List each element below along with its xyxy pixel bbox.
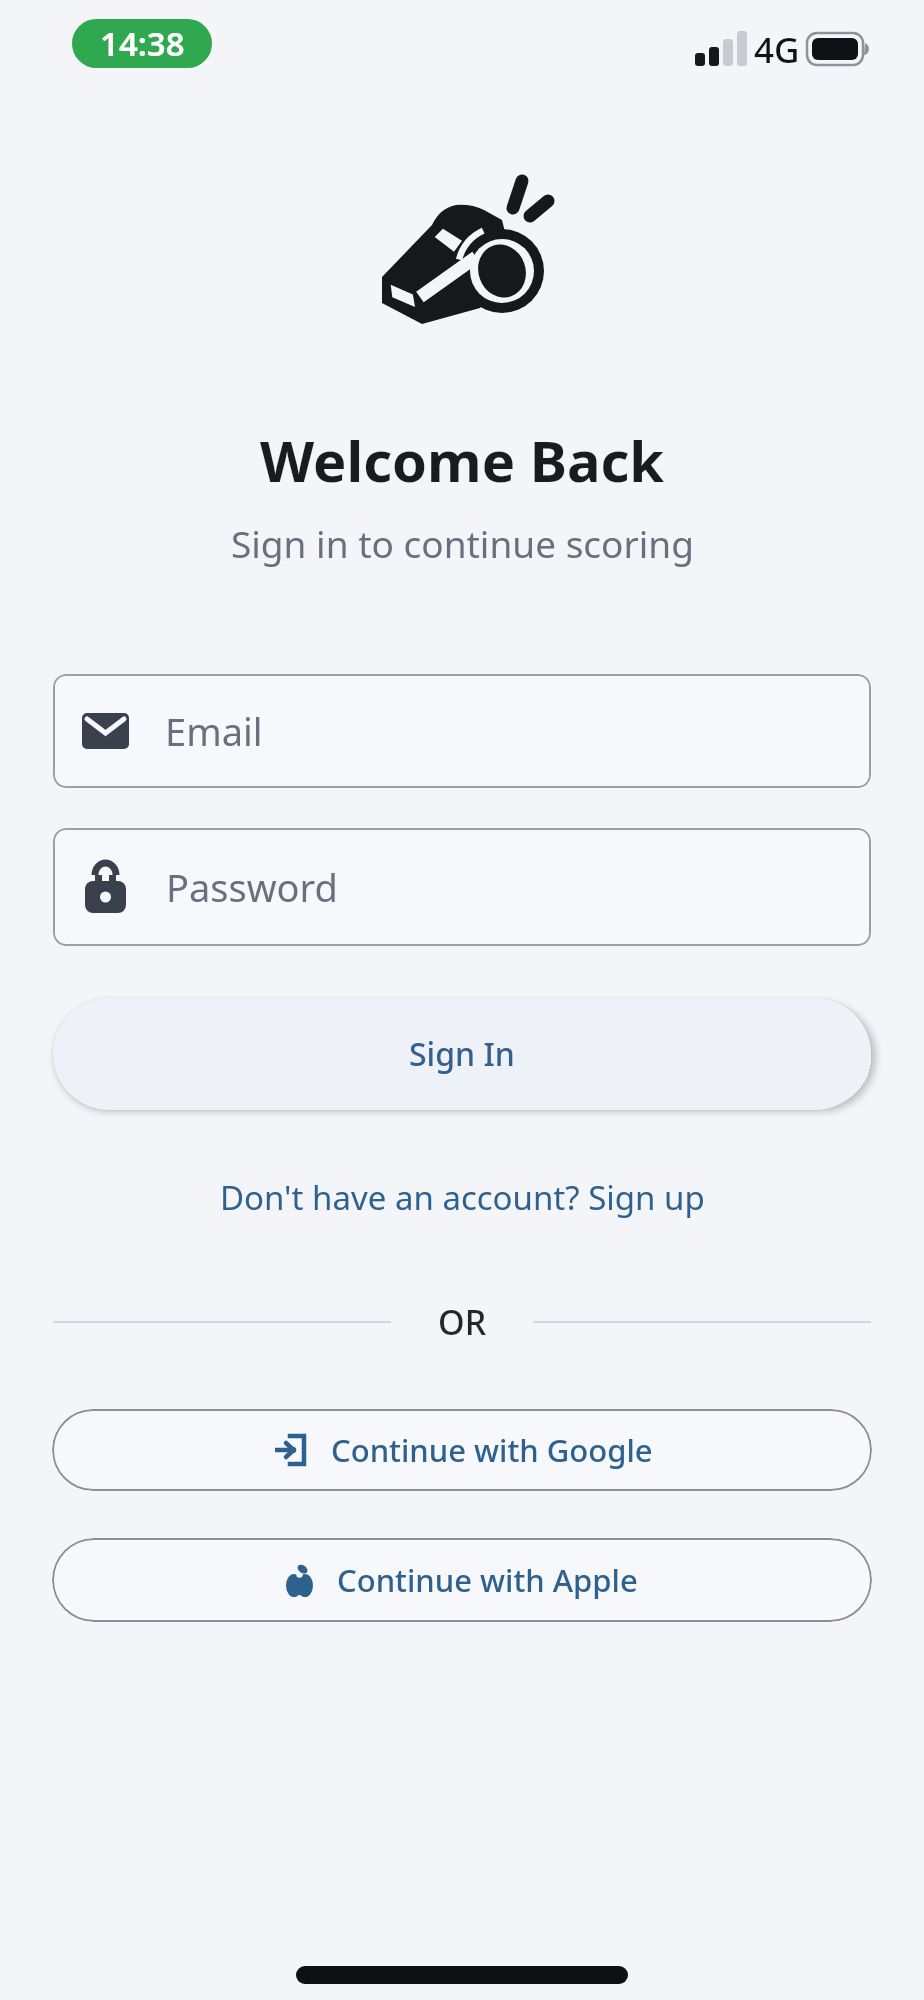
staticText: 14:38 <box>100 21 185 66</box>
staticText: Continue with Apple <box>337 1559 638 1601</box>
button[interactable]: Password <box>53 828 871 946</box>
staticText: Don't have an account? Sign up <box>220 1175 705 1220</box>
staticText: Sign In <box>409 1032 515 1076</box>
button[interactable]: Don't have an account? Sign up <box>0 1168 924 1226</box>
button[interactable]: Continue with Apple <box>52 1538 872 1622</box>
staticText: Password <box>166 861 338 913</box>
button[interactable]: Email <box>53 674 871 788</box>
staticText: OR <box>438 1299 487 1345</box>
button[interactable]: Sign In <box>53 998 871 1110</box>
staticText: Welcome Back <box>260 422 665 498</box>
button[interactable]: Continue with Google <box>52 1409 872 1491</box>
staticText: Email <box>165 705 263 757</box>
staticText: Continue with Google <box>331 1429 653 1471</box>
staticText: 4G <box>754 26 800 72</box>
staticText: Sign in to continue scoring <box>231 518 694 568</box>
